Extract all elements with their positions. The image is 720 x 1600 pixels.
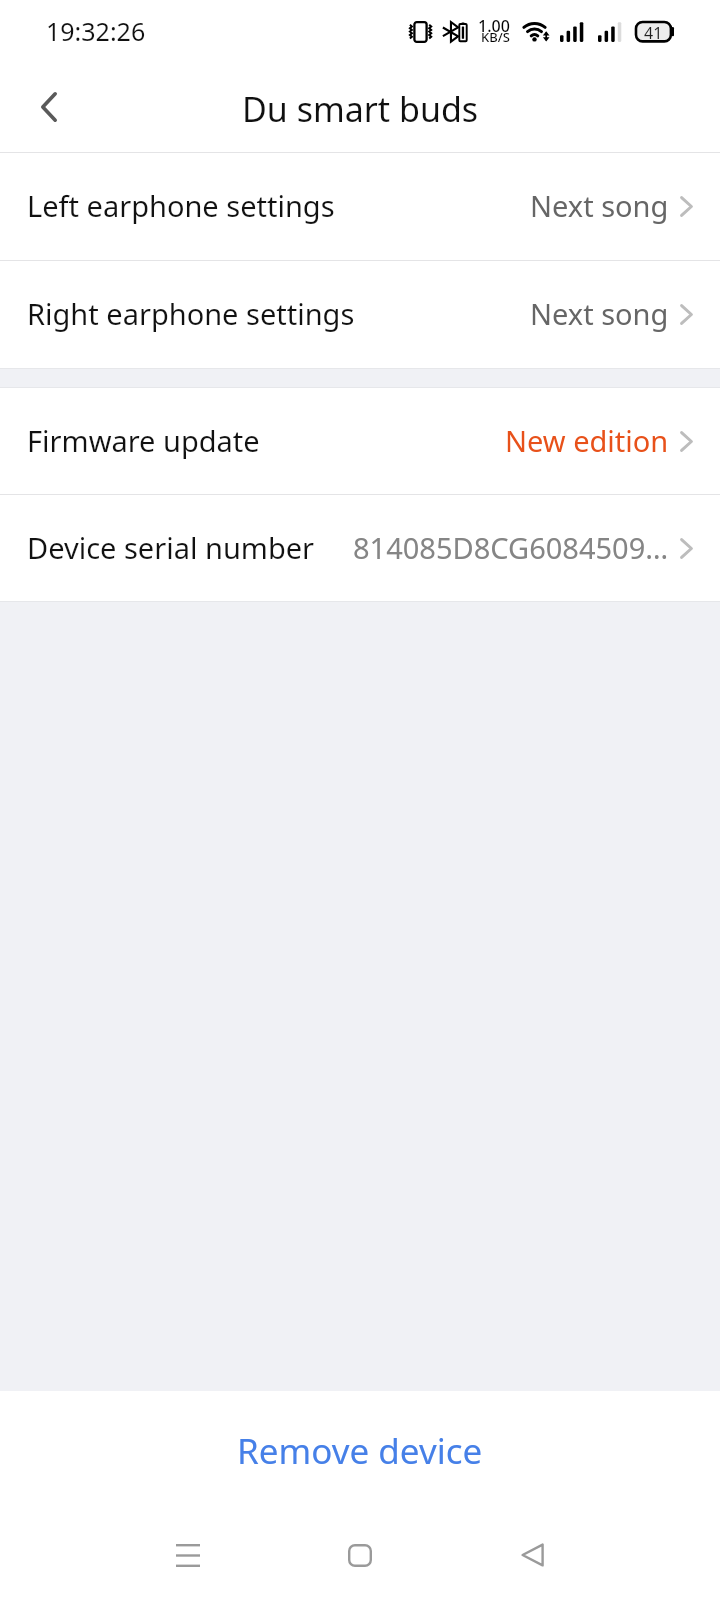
staticText: Right earphone settings: [27, 294, 355, 333]
button[interactable]: Device serial number: [0, 495, 720, 601]
staticText: 19:32:26: [46, 14, 146, 48]
staticText: Remove device: [237, 1427, 483, 1475]
staticText: 41: [644, 22, 663, 44]
button[interactable]: Back: [14, 72, 84, 142]
staticText: 814085D8CG6084509…: [353, 528, 669, 567]
staticText: New edition: [505, 421, 669, 460]
button[interactable]: Right earphone settings: [0, 261, 720, 368]
button[interactable]: Recent apps: [128, 1510, 248, 1600]
staticText: Next song: [530, 294, 669, 333]
staticText: Device serial number: [27, 528, 315, 567]
button[interactable]: Home: [300, 1510, 420, 1600]
button[interactable]: Remove device: [213, 1419, 507, 1483]
button[interactable]: Back: [472, 1510, 592, 1600]
staticText: Firmware update: [27, 421, 260, 460]
staticText: KB/S: [481, 28, 510, 46]
staticText: Du smart buds: [242, 86, 479, 132]
button[interactable]: Firmware update: [0, 388, 720, 494]
staticText: 1.00: [478, 15, 510, 37]
staticText: Left earphone settings: [27, 186, 335, 225]
staticText: Next song: [530, 186, 669, 225]
button[interactable]: Left earphone settings: [0, 153, 720, 260]
